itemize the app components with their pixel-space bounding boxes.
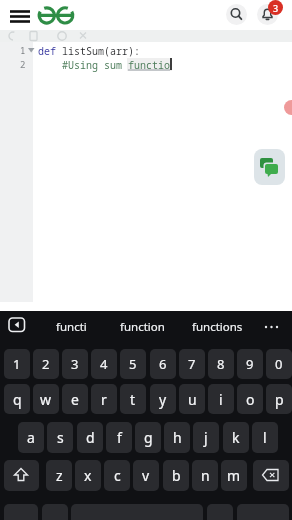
staticText: z [56,466,63,485]
staticText: o [246,390,255,409]
button[interactable]: t [120,384,146,414]
staticText: i [219,390,223,409]
button[interactable]: r [91,384,117,414]
button[interactable] [4,504,38,520]
staticText: d [86,428,95,447]
staticText: a [27,428,35,447]
button[interactable]: 6 [150,349,176,379]
staticText: 2 [20,58,26,70]
button[interactable]: 4 [91,349,117,379]
button[interactable] [6,6,34,28]
button[interactable]: u [179,384,205,414]
staticText: h [173,428,182,447]
button[interactable]: z [46,460,72,491]
button[interactable]: i [208,384,234,414]
button[interactable]: n [192,460,218,491]
staticText: q [13,390,22,409]
button[interactable] [254,149,285,185]
button[interactable]: 5 [120,349,146,379]
button[interactable]: j [193,422,219,453]
button[interactable] [4,460,39,491]
staticText: 3 [273,2,279,14]
staticText: b [172,466,181,485]
staticText: e [71,390,79,409]
staticText: 7 [188,355,196,373]
button[interactable]: w [33,384,59,414]
button[interactable]: 9 [237,349,263,379]
staticText: t [130,390,136,409]
staticText: 8 [217,355,225,373]
button[interactable]: 8 [208,349,234,379]
button[interactable]: m [221,460,247,491]
button[interactable]: functions [180,314,254,340]
button[interactable]: e [62,384,88,414]
staticText: w [40,390,52,409]
staticText: s [57,428,64,447]
button[interactable]: o [237,384,263,414]
staticText: 0 [275,355,283,373]
button[interactable]: l [252,422,278,453]
button[interactable] [257,4,278,25]
staticText: functi [56,319,87,335]
button[interactable]: q [4,384,30,414]
button[interactable]: x [75,460,101,491]
staticText: 5 [129,355,137,373]
button[interactable]: b [163,460,189,491]
button[interactable] [42,504,68,520]
button[interactable]: g [135,422,161,453]
button[interactable] [7,316,27,334]
staticText: def listSum(arr): [38,44,140,58]
staticText: 2 [42,355,50,373]
staticText: 9 [246,355,254,373]
button[interactable]: functi [40,314,102,340]
button[interactable]: 1 [4,349,30,379]
button[interactable]: v [133,460,159,491]
staticText: 6 [159,355,167,373]
button[interactable]: p [266,384,292,414]
staticText: 4 [100,355,108,373]
staticText: 3 [71,355,79,373]
button[interactable]: h [164,422,190,453]
staticText: m [227,466,241,485]
staticText: #Using sum functio [62,58,170,72]
staticText: g [144,428,153,447]
staticText: x [84,466,92,485]
button[interactable]: function [108,314,176,340]
staticText: 1 [20,44,26,56]
staticText: l [263,428,267,447]
button[interactable]: 0 [266,349,292,379]
button[interactable]: 7 [179,349,205,379]
button[interactable] [226,4,247,25]
staticText: r [101,390,107,409]
button[interactable]: c [104,460,130,491]
staticText: v [142,466,150,485]
button[interactable]: a [18,422,44,453]
staticText: f [117,428,122,447]
button[interactable]: d [77,422,103,453]
staticText: functions [192,319,243,335]
button[interactable] [207,504,233,520]
button[interactable] [253,460,289,491]
staticText: n [201,466,210,485]
staticText: k [232,428,240,447]
staticText: u [188,390,197,409]
staticText: p [275,390,284,409]
button[interactable]: k [223,422,249,453]
staticText: c [114,466,121,485]
button[interactable]: y [150,384,176,414]
button[interactable]: 3 [62,349,88,379]
button[interactable]: f [106,422,132,453]
staticText: 1 [13,355,21,373]
button[interactable]: 2 [33,349,59,379]
staticText: y [159,390,167,409]
button[interactable]: s [47,422,73,453]
staticText: function [120,319,165,335]
staticText: j [204,428,208,447]
